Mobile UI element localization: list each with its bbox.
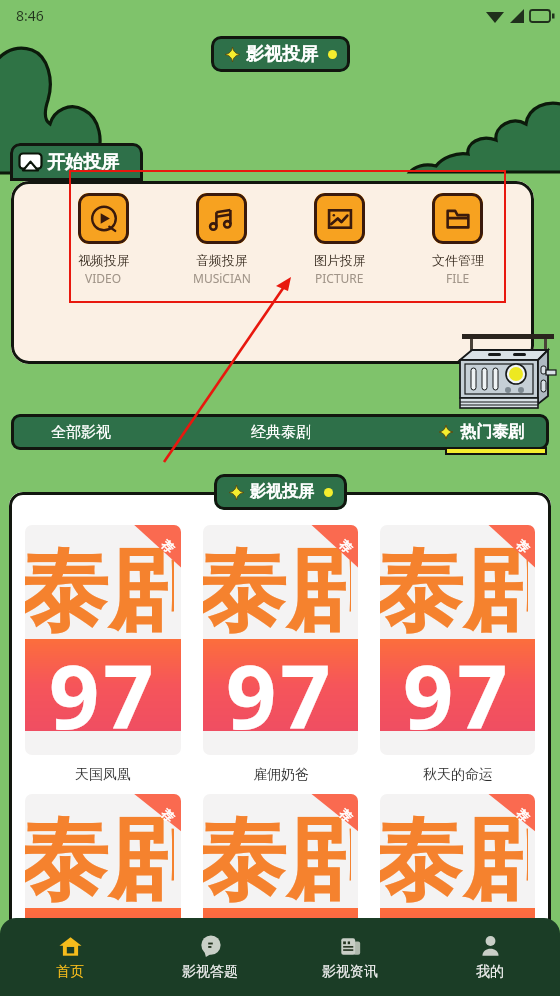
staticText: 荐 xyxy=(158,806,178,825)
button[interactable]: 影视投屏 xyxy=(211,36,350,72)
staticText: 荐 xyxy=(336,806,356,825)
staticText: 荐 xyxy=(336,537,356,556)
staticText: 泰剧 xyxy=(25,535,174,648)
button[interactable]: 泰剧 xyxy=(25,525,181,784)
staticText: 音频投屏 xyxy=(196,252,248,268)
staticText: 开始投屏 xyxy=(47,151,119,174)
staticText: 图片投屏 xyxy=(314,252,366,268)
staticText: 雇佣奶爸 xyxy=(253,766,309,784)
staticText: 97 xyxy=(226,904,335,996)
button[interactable]: 泰剧 xyxy=(25,794,181,996)
staticText: 泰剧 xyxy=(203,804,351,917)
staticText: 首页 xyxy=(56,963,84,981)
staticText: 经典泰剧 xyxy=(251,423,311,442)
staticText: 影视投屏 xyxy=(246,43,318,66)
staticText: 97 xyxy=(226,635,335,755)
staticText: 影视投屏 xyxy=(250,482,314,502)
staticText: 97 xyxy=(403,635,512,755)
staticText: 泰剧 xyxy=(380,535,528,648)
staticText: 泰剧 xyxy=(25,804,174,917)
staticText: VIDEO xyxy=(85,270,122,286)
button[interactable]: 影视投屏 xyxy=(214,474,347,510)
staticText: 97 xyxy=(403,904,512,996)
staticText: 影视答题 xyxy=(182,963,238,981)
staticText: 97 xyxy=(49,904,158,996)
staticText: 文件管理 xyxy=(432,252,484,268)
staticText: 荐 xyxy=(513,806,533,825)
button[interactable]: 泰剧 xyxy=(203,525,358,784)
button[interactable]: 图片投屏 xyxy=(306,193,373,286)
staticText: 泰剧 xyxy=(380,804,528,917)
staticText: 泰剧 xyxy=(203,535,351,648)
staticText: 影视资讯 xyxy=(322,963,378,981)
staticText: 荐 xyxy=(513,537,533,556)
staticText: 8:46 xyxy=(16,6,44,25)
button[interactable]: 首页 xyxy=(0,918,140,996)
button[interactable]: 文件管理 xyxy=(424,193,491,286)
button[interactable]: 泰剧 xyxy=(203,794,358,996)
button[interactable]: 热门泰剧 xyxy=(439,414,539,450)
button[interactable]: 音频投屏 xyxy=(188,193,255,286)
staticText: 荐 xyxy=(158,537,178,556)
staticText: 97 xyxy=(49,635,158,755)
button[interactable]: 视频投屏 xyxy=(70,193,137,286)
button[interactable]: 我的 xyxy=(420,918,560,996)
button[interactable]: 影视答题 xyxy=(140,918,280,996)
staticText: FILE xyxy=(446,270,470,286)
staticText: 视频投屏 xyxy=(78,252,130,268)
staticText: PICTURE xyxy=(315,270,364,286)
button[interactable]: 泰剧 xyxy=(380,525,535,784)
button[interactable]: 泰剧 xyxy=(380,794,535,996)
staticText: 秋天的命运 xyxy=(423,766,493,784)
staticText: 全部影视 xyxy=(51,423,111,442)
staticText: 我的 xyxy=(476,963,504,981)
button[interactable]: 开始投屏 xyxy=(10,143,143,181)
button[interactable]: 经典泰剧 xyxy=(223,414,338,450)
staticText: 天国凤凰 xyxy=(75,766,131,784)
button[interactable]: 影视资讯 xyxy=(280,918,420,996)
button[interactable]: 全部影视 xyxy=(23,414,138,450)
staticText: 热门泰剧 xyxy=(460,422,524,442)
staticText: MUSiCIAN xyxy=(193,270,251,286)
